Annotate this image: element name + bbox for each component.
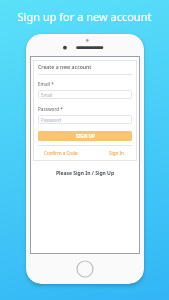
staticText: Sign In: [109, 150, 124, 156]
button[interactable]: Confirm a Code: [44, 150, 78, 156]
staticText: Email: [41, 92, 53, 98]
button[interactable]: Password: [38, 115, 132, 124]
button[interactable]: Sign In: [109, 150, 124, 156]
staticText: Please Sign In / Sign Up: [33, 170, 137, 177]
staticText: SIGN UP: [76, 133, 95, 139]
staticText: Sign up for a new account: [0, 9, 169, 24]
staticText: Password: [41, 117, 61, 123]
button[interactable]: SIGN UP: [38, 131, 132, 141]
button[interactable]: Home: [76, 260, 94, 278]
button[interactable]: Email: [38, 90, 132, 99]
staticText: Create a new account: [38, 63, 92, 70]
staticText: Confirm a Code: [44, 150, 78, 156]
staticText: Email *: [38, 81, 54, 87]
staticText: Password *: [38, 106, 63, 112]
